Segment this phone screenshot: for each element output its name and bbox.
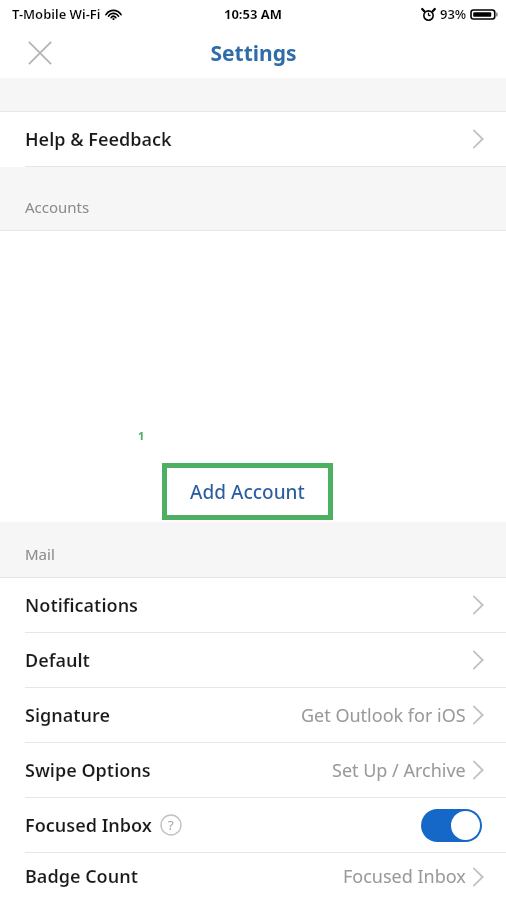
staticText: 1 bbox=[138, 428, 145, 443]
staticText: Focused Inbox bbox=[343, 864, 466, 889]
staticText: Get Outlook for iOS bbox=[301, 703, 466, 728]
staticText: Settings bbox=[210, 39, 297, 68]
button[interactable]: Focused Inbox toggle, on bbox=[421, 809, 482, 842]
staticText: Signature bbox=[25, 703, 111, 728]
button[interactable]: Help & Feedback bbox=[0, 112, 506, 167]
staticText: Help & Feedback bbox=[25, 127, 172, 152]
button[interactable]: Add Account bbox=[162, 463, 333, 520]
button[interactable]: Focused Inbox bbox=[0, 798, 506, 853]
staticText: 93% bbox=[440, 5, 467, 23]
staticText: T-Mobile Wi-Fi bbox=[12, 5, 101, 23]
staticText: Default bbox=[25, 648, 90, 673]
button[interactable]: Badge Count bbox=[0, 853, 506, 900]
staticText: Mail bbox=[25, 544, 55, 564]
button[interactable]: Swipe Options bbox=[0, 743, 506, 798]
staticText: ? bbox=[168, 816, 174, 834]
staticText: Set Up / Archive bbox=[332, 758, 466, 783]
button[interactable]: Signature bbox=[0, 688, 506, 743]
staticText: 10:53 AM bbox=[224, 5, 283, 23]
staticText: Accounts bbox=[25, 197, 90, 217]
button[interactable]: Close bbox=[18, 31, 62, 75]
button[interactable]: Notifications bbox=[0, 578, 506, 633]
staticText: Badge Count bbox=[25, 864, 139, 889]
staticText: Add Account bbox=[190, 479, 305, 505]
staticText: Swipe Options bbox=[25, 758, 151, 783]
button[interactable]: Help about Focused Inbox bbox=[160, 814, 182, 836]
button[interactable]: Default bbox=[0, 633, 506, 688]
staticText: Notifications bbox=[25, 593, 138, 618]
staticText: Focused Inbox bbox=[25, 813, 152, 838]
